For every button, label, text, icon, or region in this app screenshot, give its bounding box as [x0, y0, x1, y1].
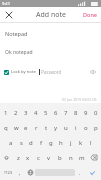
staticText: h: [59, 139, 63, 147]
staticText: 9:41: [2, 1, 10, 6]
staticText: w: [14, 124, 19, 132]
staticText: 02 Jan 2019 08:51:05: [62, 97, 97, 102]
button[interactable]: o: [81, 120, 91, 135]
staticText: q: [4, 124, 8, 132]
button[interactable]: m: [76, 150, 87, 165]
staticText: 7: [64, 109, 68, 117]
button[interactable]: 2: [11, 105, 21, 120]
staticText: Lock by note: [11, 69, 36, 75]
button[interactable]: 9: [81, 105, 91, 120]
button[interactable]: Close: [3, 9, 15, 21]
button[interactable]: 5: [41, 105, 51, 120]
button[interactable]: ,: [15, 165, 25, 180]
button[interactable]: q: [0, 120, 11, 135]
staticText: 5: [44, 109, 48, 117]
staticText: x: [26, 154, 30, 162]
button[interactable]: 1: [0, 105, 11, 120]
button[interactable]: u: [61, 120, 71, 135]
button[interactable]: p: [91, 120, 101, 135]
staticText: v: [47, 154, 51, 162]
staticText: Add note: [36, 10, 66, 20]
staticText: k: [79, 139, 83, 147]
staticText: 6: [54, 109, 58, 117]
staticText: 2: [14, 109, 18, 117]
staticText: u: [64, 124, 68, 132]
staticText: m: [79, 154, 85, 162]
button[interactable]: Show password: [89, 68, 97, 76]
staticText: c: [37, 154, 40, 162]
staticText: e: [24, 124, 28, 132]
staticText: j: [70, 139, 72, 147]
button[interactable]: b: [54, 150, 65, 165]
button[interactable]: n: [65, 150, 76, 165]
staticText: b: [58, 154, 62, 162]
button[interactable]: 4: [31, 105, 41, 120]
button[interactable]: 7: [61, 105, 71, 120]
staticText: Password: [41, 69, 62, 75]
button[interactable]: y: [51, 120, 61, 135]
button[interactable]: t: [41, 120, 51, 135]
button[interactable]: c: [33, 150, 43, 165]
button[interactable]: r: [31, 120, 41, 135]
staticText: l: [90, 139, 92, 147]
button[interactable]: Done: [79, 8, 101, 21]
button[interactable]: j: [66, 135, 76, 150]
staticText: 8: [74, 109, 78, 117]
staticText: a: [9, 139, 13, 147]
staticText: z: [17, 154, 20, 162]
staticText: d: [29, 139, 33, 147]
button[interactable]: 3: [21, 105, 31, 120]
staticText: 3: [24, 109, 28, 117]
button[interactable]: w: [11, 120, 21, 135]
staticText: r: [35, 124, 38, 132]
button[interactable]: Shift: [0, 150, 13, 165]
button[interactable]: x: [23, 150, 33, 165]
staticText: 4: [34, 109, 38, 117]
staticText: i: [75, 124, 77, 132]
button[interactable]: z: [13, 150, 23, 165]
staticText: 1: [4, 109, 8, 117]
staticText: g: [49, 139, 53, 147]
staticText: 9: [84, 109, 88, 117]
staticText: 0: [94, 109, 98, 117]
button[interactable]: 6: [51, 105, 61, 120]
staticText: p: [94, 124, 98, 132]
staticText: Ok notepad: [5, 49, 33, 56]
staticText: y: [54, 124, 58, 132]
button[interactable]: .: [75, 165, 85, 180]
button[interactable]: Change language: [25, 165, 35, 180]
button[interactable]: i: [71, 120, 81, 135]
staticText: ,: [19, 169, 21, 176]
button[interactable]: Enter: [85, 165, 100, 180]
staticText: .: [79, 169, 81, 176]
button[interactable]: v: [43, 150, 54, 165]
staticText: s: [20, 139, 23, 147]
button[interactable]: Backspace: [87, 150, 101, 165]
staticText: ?123: [4, 170, 13, 175]
button[interactable]: Lock by note: [4, 69, 36, 75]
staticText: Notepad: [5, 30, 28, 37]
button[interactable]: ?123: [1, 165, 15, 180]
staticText: f: [40, 139, 43, 147]
staticText: t: [45, 124, 48, 132]
button[interactable]: a: [5, 135, 16, 150]
button[interactable]: 8: [71, 105, 81, 120]
staticText: Done: [83, 11, 97, 18]
button[interactable]: l: [86, 135, 96, 150]
button[interactable]: h: [56, 135, 66, 150]
button[interactable]: g: [46, 135, 56, 150]
staticText: n: [69, 154, 73, 162]
button[interactable]: k: [76, 135, 86, 150]
button[interactable]: 0: [91, 105, 101, 120]
button[interactable]: d: [26, 135, 36, 150]
button[interactable]: s: [16, 135, 26, 150]
button[interactable]: f: [36, 135, 46, 150]
button[interactable]: e: [21, 120, 31, 135]
staticText: o: [84, 124, 88, 132]
